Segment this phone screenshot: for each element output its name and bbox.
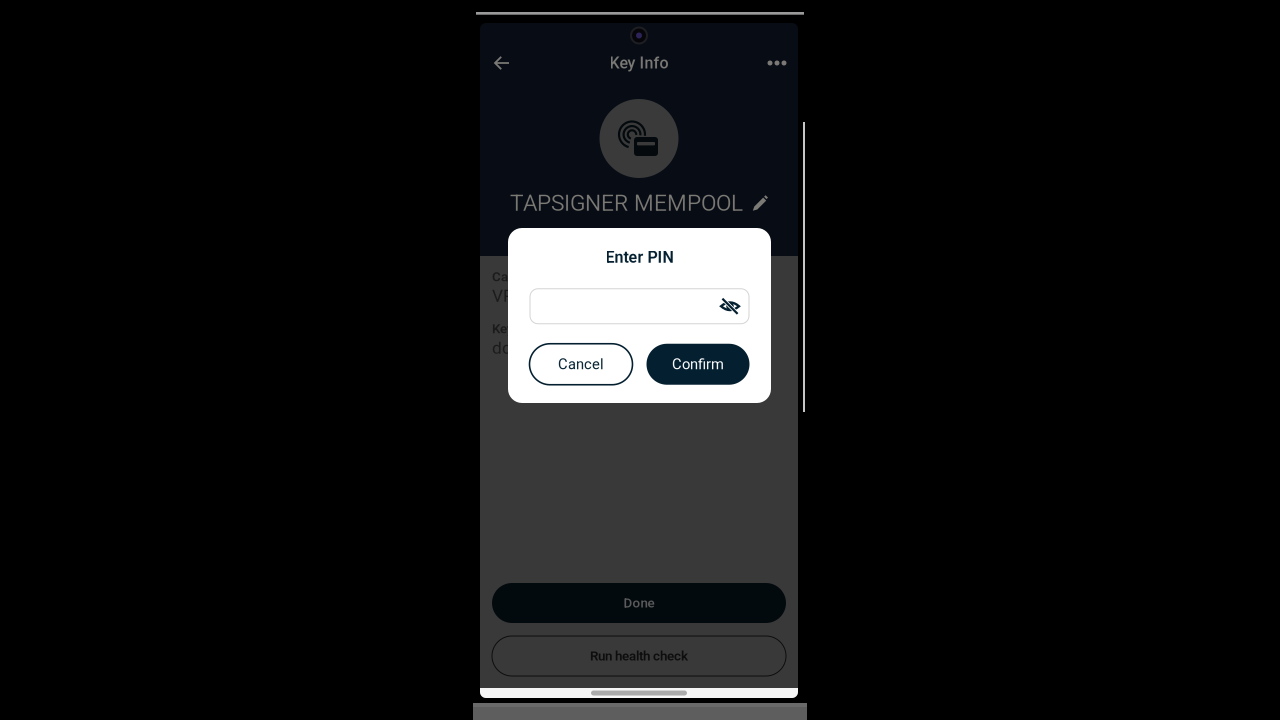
staticText: TAPSIGNER MEMPOOL	[510, 190, 743, 216]
button[interactable]: Cancel	[529, 344, 632, 385]
button[interactable]: Confirm	[646, 344, 749, 385]
button[interactable]: Rename card	[752, 194, 768, 211]
staticText: Enter PIN	[605, 248, 673, 267]
staticText: Card ident	[492, 269, 553, 285]
staticText: Cancel	[558, 356, 604, 373]
button[interactable]: Show PIN	[720, 296, 740, 316]
staticText: VFHS-KPWA	[492, 286, 588, 306]
button[interactable]: Back	[485, 48, 517, 78]
staticText: Confirm	[672, 356, 724, 373]
staticText: dd/84h/0h	[492, 338, 576, 358]
staticText: Done	[623, 595, 654, 611]
staticText: Key Info	[609, 54, 668, 72]
staticText: Key path	[492, 321, 543, 336]
button[interactable]: Run health check	[492, 636, 786, 676]
button[interactable]: Done	[492, 583, 786, 623]
button[interactable]: More options	[761, 48, 793, 78]
staticText: Run health check	[590, 648, 688, 664]
